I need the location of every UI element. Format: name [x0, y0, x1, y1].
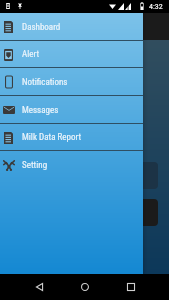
staticText: Alert	[22, 49, 40, 60]
button[interactable]: Back	[20, 274, 58, 300]
button[interactable]	[96, 199, 158, 226]
staticText: Milk Data Report	[22, 132, 82, 143]
button[interactable]: Home	[66, 274, 104, 300]
button[interactable]: Setting	[0, 151, 143, 179]
staticText: Notifications	[22, 77, 68, 88]
staticText: Messages	[22, 105, 59, 116]
button[interactable]: Recent apps	[112, 274, 150, 300]
staticText: 4:32	[149, 2, 163, 11]
button[interactable]: Dashboard	[0, 13, 143, 41]
button[interactable]: Messages	[0, 96, 143, 124]
staticText: Dashboard	[22, 22, 61, 33]
button[interactable]: Notifications	[0, 68, 143, 96]
button[interactable]: Milk Data Report	[0, 124, 143, 151]
button[interactable]	[96, 162, 158, 189]
staticText: Setting	[22, 160, 48, 171]
button[interactable]: Alert	[0, 41, 143, 68]
